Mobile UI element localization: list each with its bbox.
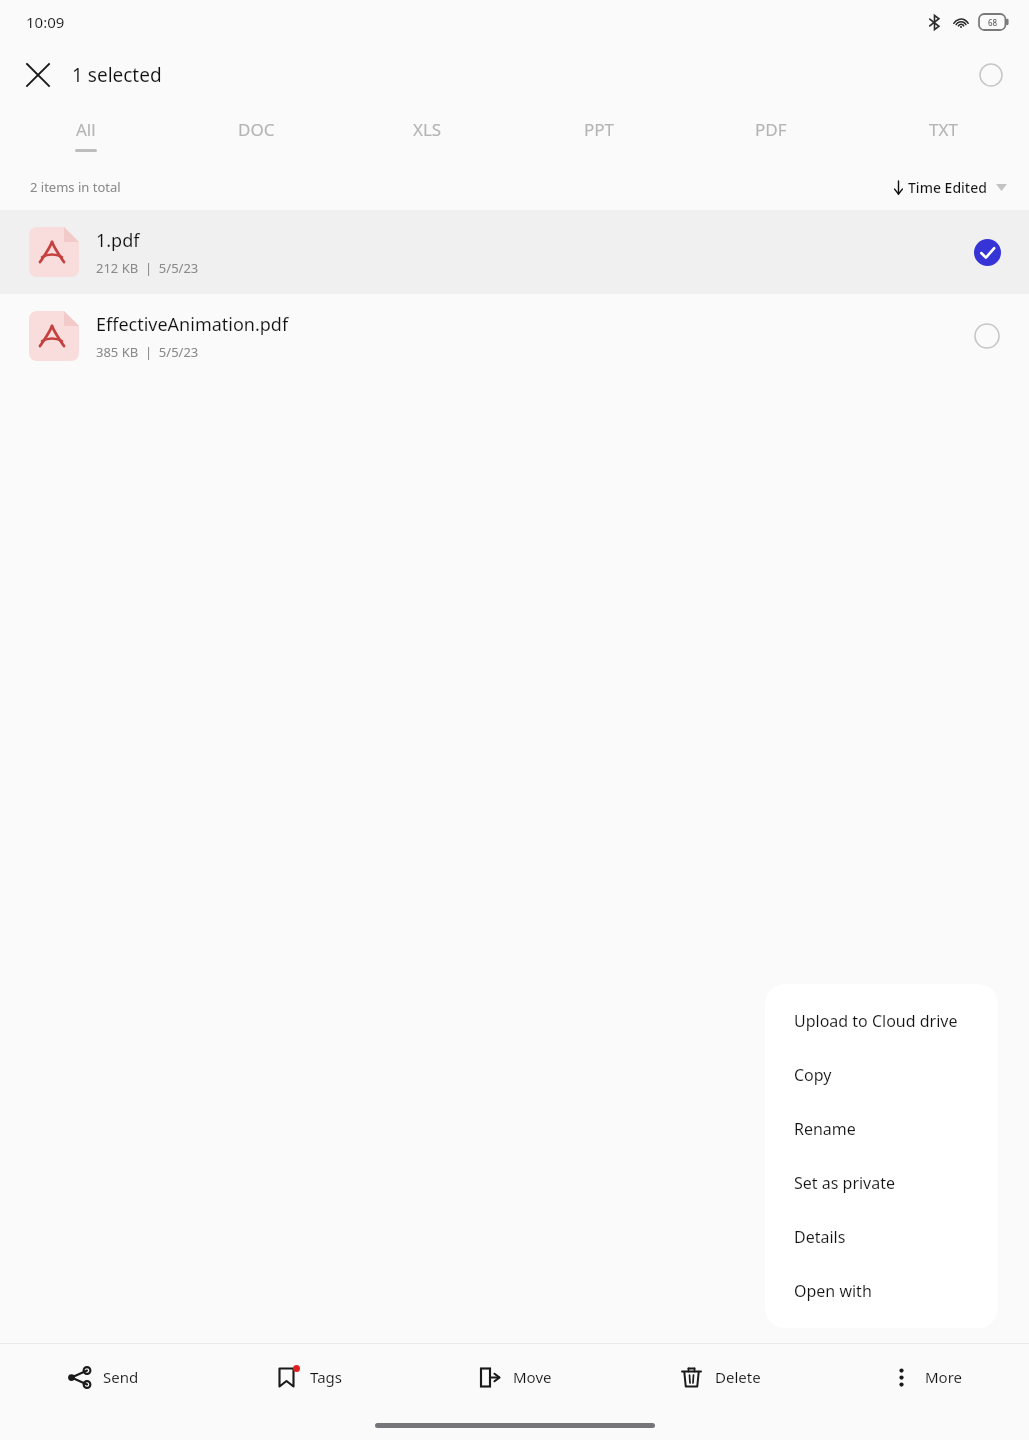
button[interactable]: DOC bbox=[171, 106, 342, 164]
staticText: Tags bbox=[310, 1367, 342, 1387]
staticText: Copy bbox=[794, 1064, 832, 1086]
button[interactable]: TXT bbox=[857, 106, 1029, 164]
button[interactable]: Move bbox=[411, 1344, 617, 1410]
staticText: Time Edited bbox=[908, 178, 987, 197]
button[interactable]: Rename bbox=[765, 1102, 998, 1156]
button[interactable]: Select EffectiveAnimation.pdf bbox=[961, 310, 1013, 362]
button[interactable]: Time Edited bbox=[888, 174, 1011, 201]
staticText: EffectiveAnimation.pdf bbox=[96, 312, 289, 337]
staticText: 2 items in total bbox=[30, 178, 121, 196]
button[interactable]: XLS bbox=[342, 106, 513, 164]
staticText: XLS bbox=[413, 118, 442, 141]
staticText: Details bbox=[794, 1226, 846, 1248]
button[interactable]: Delete bbox=[617, 1344, 823, 1410]
staticText: All bbox=[76, 118, 96, 141]
staticText: Delete bbox=[715, 1367, 761, 1387]
button[interactable]: Send bbox=[0, 1344, 205, 1410]
button[interactable]: Select all bbox=[967, 51, 1015, 99]
staticText: More bbox=[925, 1367, 963, 1387]
staticText: Open with bbox=[794, 1280, 872, 1302]
staticText: Set as private bbox=[794, 1172, 896, 1194]
staticText: PDF bbox=[755, 118, 787, 141]
button[interactable]: Tags bbox=[205, 1344, 411, 1410]
button[interactable]: Deselect 1.pdf bbox=[961, 226, 1013, 278]
button[interactable]: PPT bbox=[513, 106, 685, 164]
button[interactable]: 1.pdf bbox=[0, 210, 1029, 294]
staticText: 212 KB | 5/5/23 bbox=[96, 259, 199, 277]
button[interactable]: Upload to Cloud drive bbox=[765, 994, 998, 1048]
staticText: DOC bbox=[238, 118, 275, 141]
button[interactable]: Close selection bbox=[14, 51, 62, 99]
staticText: Rename bbox=[794, 1118, 856, 1140]
button[interactable]: Copy bbox=[765, 1048, 998, 1102]
button[interactable]: PDF bbox=[685, 106, 857, 164]
staticText: 10:09 bbox=[26, 12, 65, 32]
staticText: 1.pdf bbox=[96, 228, 140, 253]
staticText: Move bbox=[513, 1367, 552, 1387]
staticText: PPT bbox=[584, 118, 615, 141]
staticText: 68 bbox=[988, 17, 998, 28]
staticText: 385 KB | 5/5/23 bbox=[96, 343, 199, 361]
button[interactable]: All bbox=[0, 106, 171, 164]
staticText: TXT bbox=[929, 118, 958, 141]
button[interactable]: Open with bbox=[765, 1264, 998, 1318]
button[interactable]: Set as private bbox=[765, 1156, 998, 1210]
staticText: 1 selected bbox=[72, 62, 162, 88]
button[interactable]: Details bbox=[765, 1210, 998, 1264]
button[interactable]: More bbox=[823, 1344, 1029, 1410]
button[interactable]: EffectiveAnimation.pdf bbox=[0, 294, 1029, 378]
staticText: Upload to Cloud drive bbox=[794, 1010, 958, 1032]
staticText: Send bbox=[103, 1367, 139, 1387]
